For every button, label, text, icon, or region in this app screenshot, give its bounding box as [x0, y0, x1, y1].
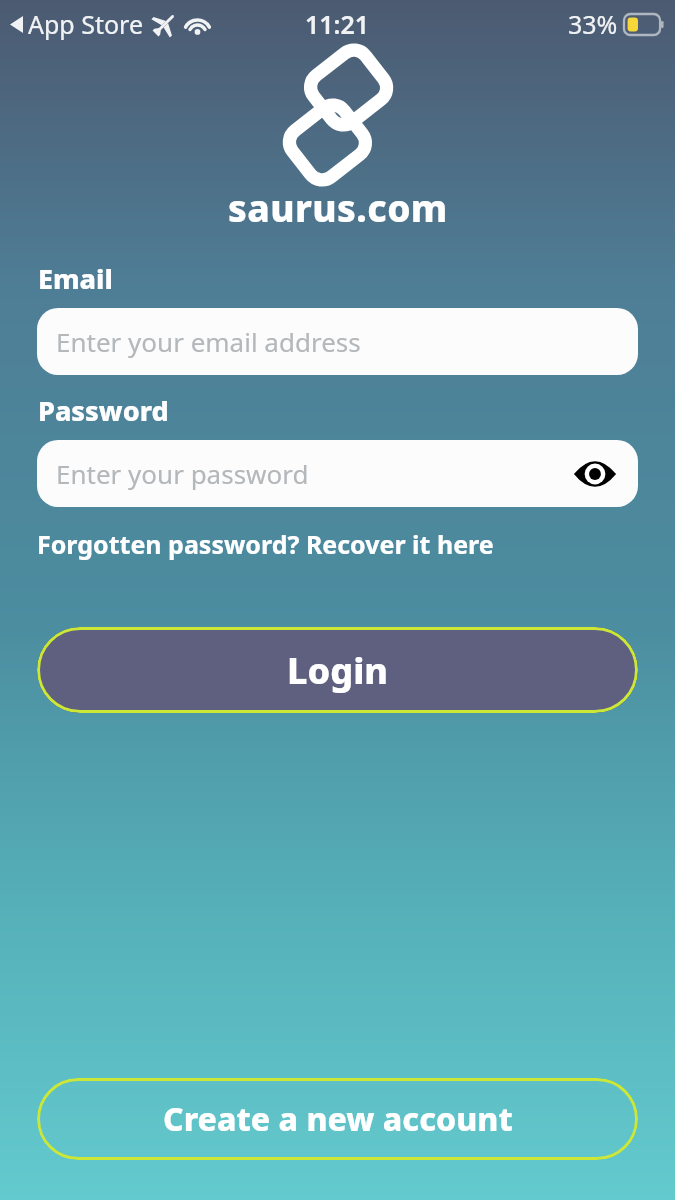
staticText: Forgotten password? Recover it here [37, 527, 494, 561]
staticText: 33% [568, 7, 618, 41]
staticText: Login [287, 646, 389, 695]
button[interactable]: Enter your email address [37, 308, 638, 375]
staticText: Password [38, 392, 169, 429]
button[interactable]: Create a new account [37, 1078, 638, 1160]
staticText: Create a new account [163, 1097, 513, 1141]
staticText: 11:21 [305, 7, 370, 41]
button[interactable]: Show password [572, 456, 618, 492]
button[interactable]: Enter your password [37, 440, 638, 507]
button[interactable]: Login [37, 627, 638, 713]
staticText: Enter your password [56, 456, 309, 491]
staticText: Enter your email address [56, 324, 361, 359]
staticText: Email [38, 260, 113, 297]
staticText: saurus.com [228, 182, 448, 232]
button[interactable]: Forgotten password? Recover it here [37, 527, 494, 561]
staticText: App Store [28, 7, 144, 41]
